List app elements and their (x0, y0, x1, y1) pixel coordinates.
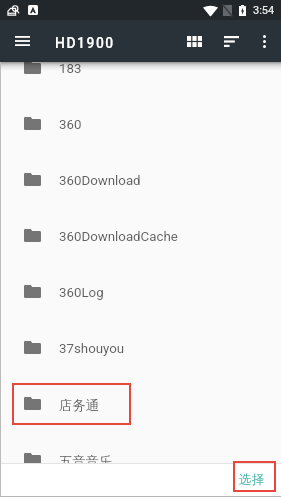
button[interactable]: 183 (0, 39, 281, 95)
staticText: 360Download (59, 173, 141, 189)
button[interactable]: 店务通 (0, 375, 281, 431)
button[interactable]: 选择 (229, 465, 275, 495)
staticText: 店务通 (59, 397, 99, 414)
staticText: 37shouyou (59, 341, 125, 357)
button[interactable]: 五音音乐 (0, 431, 281, 487)
staticText: 360Log (59, 285, 104, 301)
staticText: 五音音乐 (59, 453, 113, 470)
button[interactable]: 360DownloadCache (0, 207, 281, 263)
button[interactable]: Grid view (177, 20, 212, 62)
staticText: 选择 (239, 472, 265, 488)
staticText: 360 (59, 117, 82, 133)
button[interactable]: 360 (0, 95, 281, 151)
staticText: 3:54 (253, 4, 275, 17)
staticText: HD1900 (55, 35, 115, 51)
button[interactable]: More options (247, 20, 281, 62)
staticText: 360DownloadCache (59, 229, 178, 245)
button[interactable]: 360Log (0, 263, 281, 319)
button[interactable]: Sort (214, 20, 249, 62)
staticText: 183 (59, 61, 82, 77)
button[interactable]: 37shouyou (0, 319, 281, 375)
button[interactable]: 360Download (0, 151, 281, 207)
button[interactable]: Open navigation drawer (0, 20, 45, 62)
